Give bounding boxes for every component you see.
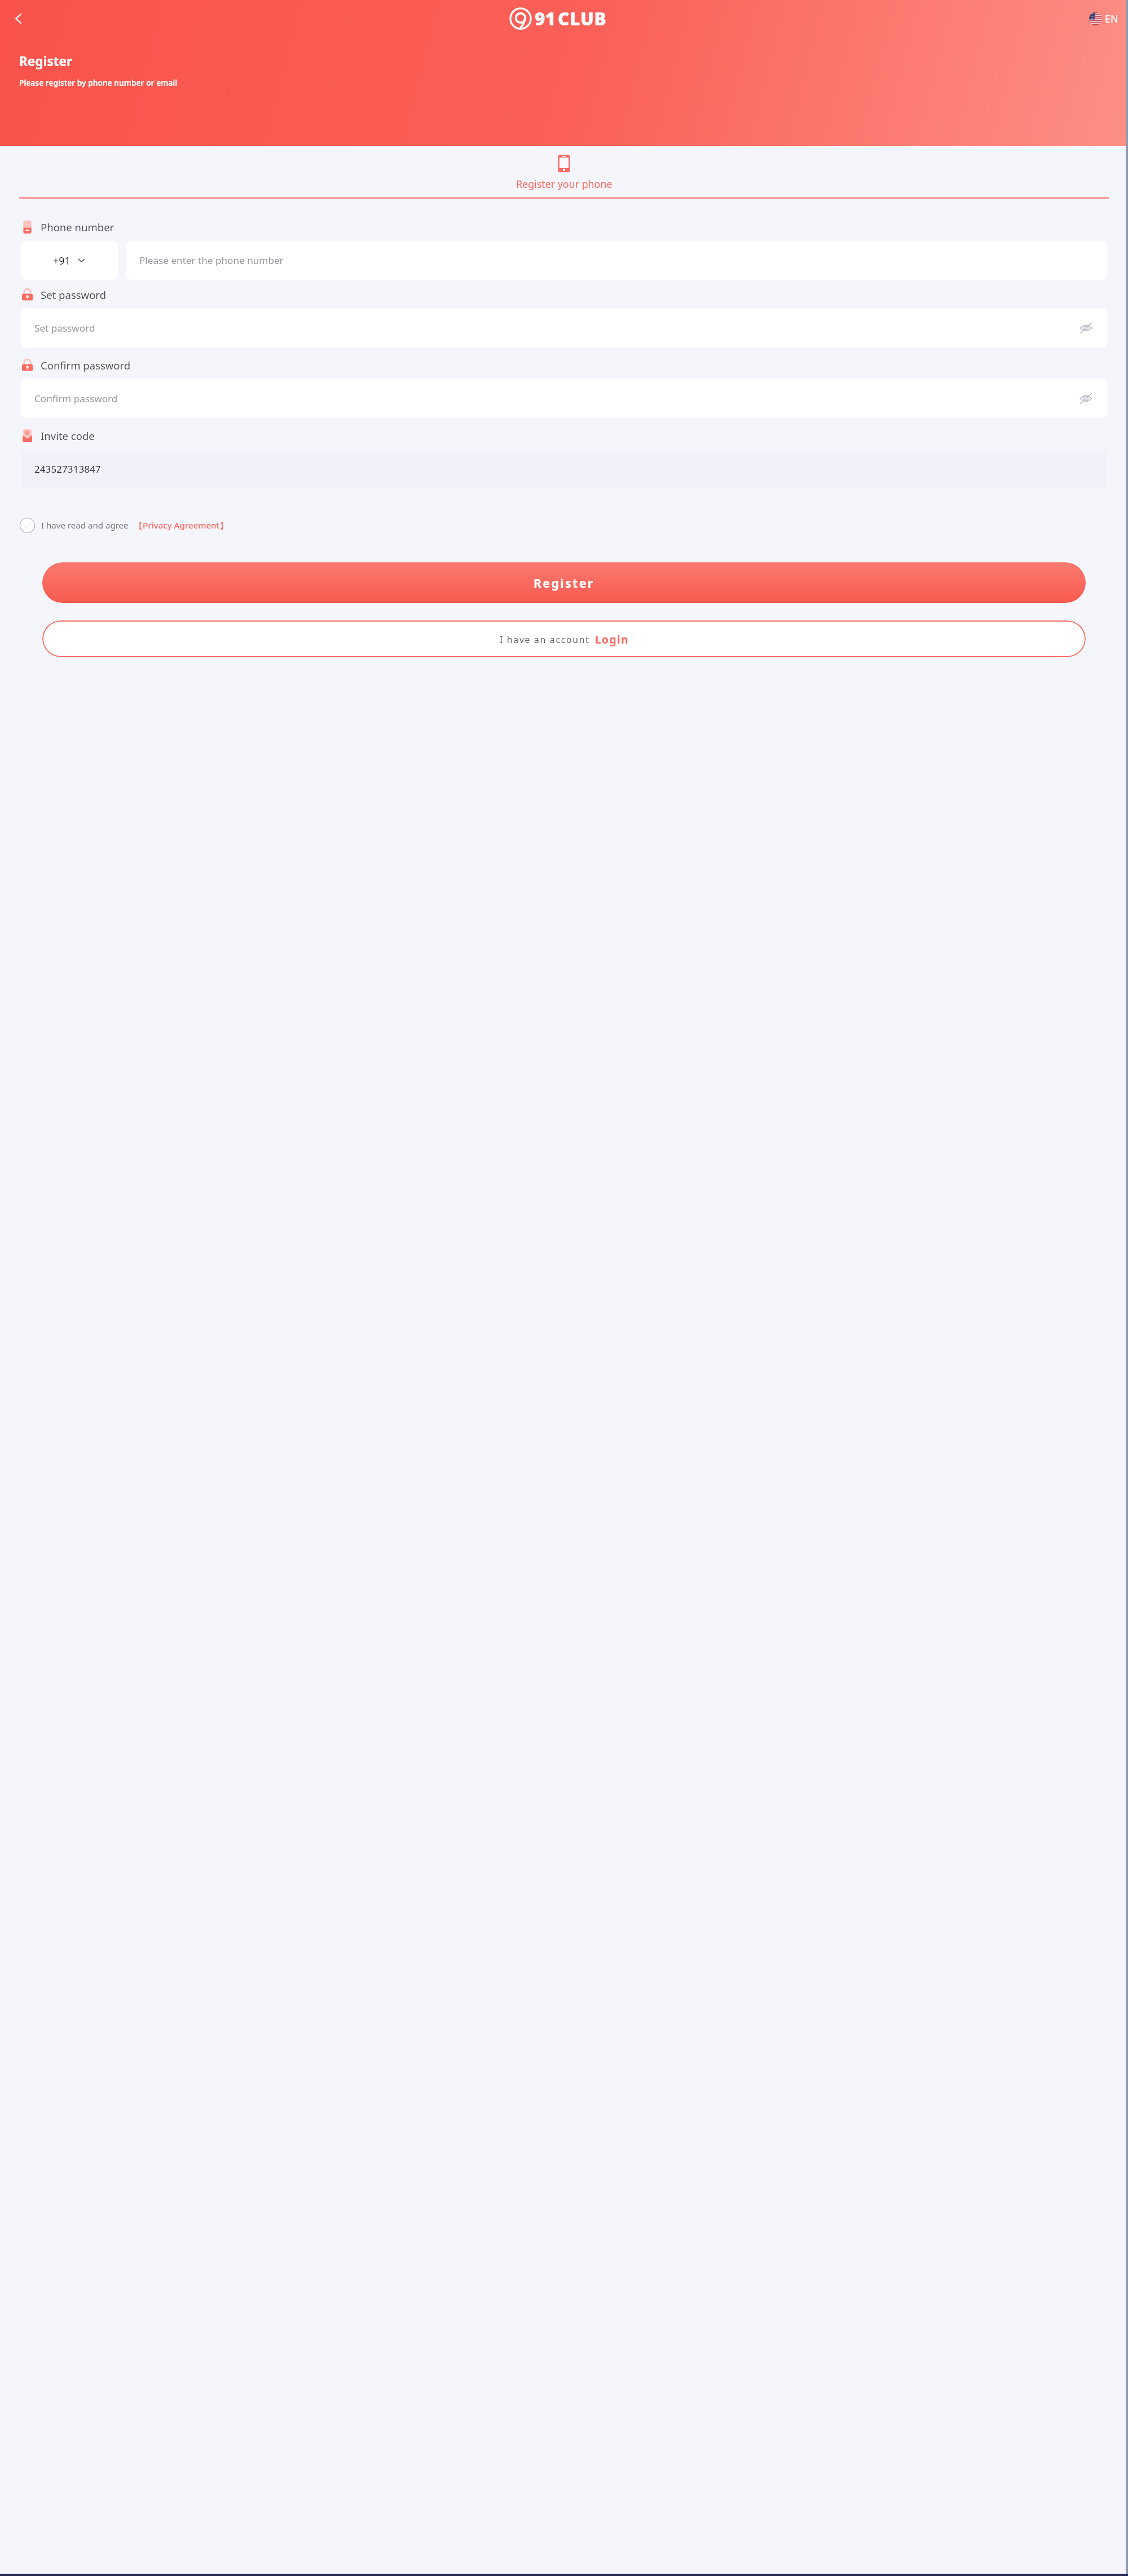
staticText: Please register by phone number or email	[19, 77, 178, 88]
staticText: 243527313847	[34, 463, 101, 475]
button[interactable]: I have an account	[42, 620, 1086, 657]
button[interactable]: 243527313847	[21, 450, 1107, 488]
staticText: Register	[534, 575, 594, 591]
staticText: Set password	[41, 288, 107, 302]
staticText: Register your phone	[516, 177, 613, 191]
staticText: Confirm password	[34, 392, 118, 405]
staticText: 【Privacy Agreement】	[134, 519, 228, 531]
button[interactable]: Register	[42, 562, 1086, 603]
button[interactable]: Register your phone	[0, 155, 1128, 197]
staticText: CLUB	[558, 6, 607, 30]
button[interactable]: Confirm password	[21, 379, 1107, 418]
staticText: 91	[535, 6, 556, 30]
staticText: EN	[1105, 12, 1118, 25]
staticText: I have an account	[500, 633, 590, 645]
button[interactable]: Show password	[1078, 320, 1094, 336]
staticText: Confirm password	[41, 358, 131, 372]
button[interactable]: EN	[1087, 10, 1120, 27]
button[interactable]: Set password	[21, 309, 1107, 347]
staticText: Login	[595, 632, 629, 646]
button[interactable]: I have read and agree	[19, 517, 228, 534]
button[interactable]: Please enter the phone number	[126, 241, 1107, 280]
staticText: Register	[19, 52, 73, 70]
staticText: +91	[53, 254, 70, 267]
staticText: I have read and agree	[41, 519, 129, 531]
button[interactable]: +91	[21, 241, 118, 280]
staticText: Please enter the phone number	[139, 254, 284, 267]
button[interactable]: Show password	[1078, 391, 1094, 406]
staticText: Phone number	[41, 220, 114, 234]
staticText: Set password	[34, 322, 95, 334]
button[interactable]: Back	[8, 8, 29, 29]
staticText: Invite code	[41, 429, 95, 443]
